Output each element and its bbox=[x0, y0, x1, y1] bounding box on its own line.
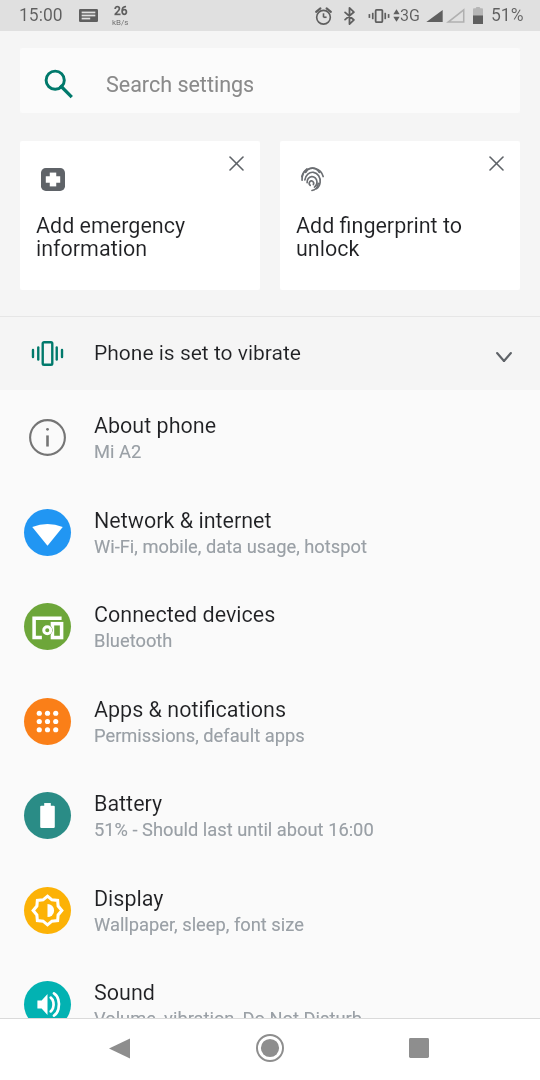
button[interactable]: Apps & notifications bbox=[0, 674, 540, 769]
staticText: 26 bbox=[114, 4, 128, 18]
staticText: Mi A2 bbox=[94, 441, 142, 462]
button[interactable]: Network & internet bbox=[0, 485, 540, 580]
staticText: Battery bbox=[94, 791, 163, 816]
staticText: Wallpaper, sleep, font size bbox=[94, 914, 304, 935]
staticText: Phone is set to vibrate bbox=[94, 341, 301, 366]
staticText: 15:00 bbox=[19, 5, 63, 26]
button[interactable]: Dismiss bbox=[280, 141, 520, 290]
staticText: 51% - Should last until about 16:00 bbox=[94, 819, 374, 840]
button[interactable]: Dismiss bbox=[20, 141, 260, 290]
button[interactable]: Connected devices bbox=[0, 579, 540, 674]
staticText: Wi-Fi, mobile, data usage, hotspot bbox=[94, 536, 367, 557]
staticText: About phone bbox=[94, 413, 217, 438]
button[interactable]: Sound bbox=[0, 957, 540, 1018]
staticText: Bluetooth bbox=[94, 630, 173, 651]
staticText: Volume, vibration, Do Not Disturb bbox=[94, 1008, 363, 1018]
staticText: Apps & notifications bbox=[94, 697, 287, 722]
button[interactable]: About phone bbox=[0, 390, 540, 485]
button[interactable]: Dismiss bbox=[477, 144, 515, 182]
staticText: Network & internet bbox=[94, 508, 272, 533]
staticText: Add emergency information bbox=[36, 213, 186, 261]
staticText: Search settings bbox=[106, 72, 255, 97]
staticText: Add fingerprint to unlock bbox=[296, 213, 463, 261]
staticText: Connected devices bbox=[94, 602, 276, 627]
button[interactable]: Search settings bbox=[20, 48, 520, 113]
staticText: Display bbox=[94, 886, 164, 911]
staticText: kB/s bbox=[112, 18, 129, 27]
button[interactable]: Home bbox=[242, 1020, 298, 1076]
button[interactable]: Display bbox=[0, 863, 540, 958]
staticText: Sound bbox=[94, 980, 155, 1005]
button[interactable]: Expand bbox=[482, 335, 526, 379]
button[interactable]: Phone is set to vibrate bbox=[0, 317, 540, 390]
button[interactable]: Battery bbox=[0, 768, 540, 863]
button[interactable]: Dismiss bbox=[217, 144, 255, 182]
button[interactable]: Recent apps bbox=[391, 1020, 447, 1076]
staticText: 51% bbox=[491, 5, 524, 26]
staticText: Permissions, default apps bbox=[94, 725, 305, 746]
button[interactable]: Back bbox=[91, 1020, 147, 1076]
staticText: 3G bbox=[400, 6, 420, 25]
